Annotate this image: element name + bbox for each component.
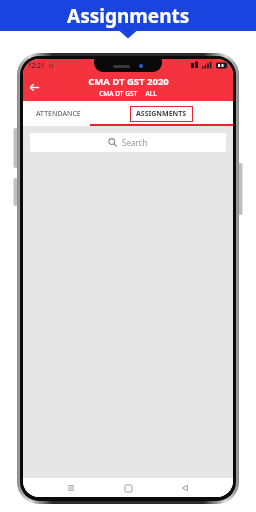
button[interactable]: ASSIGNMENTS — [90, 101, 233, 126]
staticText: ASSIGNMENTS — [136, 109, 187, 119]
button[interactable]: Home — [119, 479, 137, 497]
button[interactable]: Recents — [62, 479, 80, 497]
button[interactable]: ATTENDANCE — [30, 101, 87, 126]
staticText: Search — [122, 137, 148, 148]
staticText: CMA DT GST 2020 — [88, 75, 169, 88]
staticText: CMA DT GST ALL — [99, 89, 157, 98]
staticText: 12:21 — [28, 61, 45, 70]
staticText: ATTENDANCE — [36, 109, 81, 119]
staticText: U — [49, 62, 54, 70]
staticText: Assignments — [67, 3, 190, 29]
button[interactable]: Back — [23, 76, 45, 98]
button[interactable]: Search — [30, 133, 226, 152]
button[interactable]: Back — [176, 479, 194, 497]
